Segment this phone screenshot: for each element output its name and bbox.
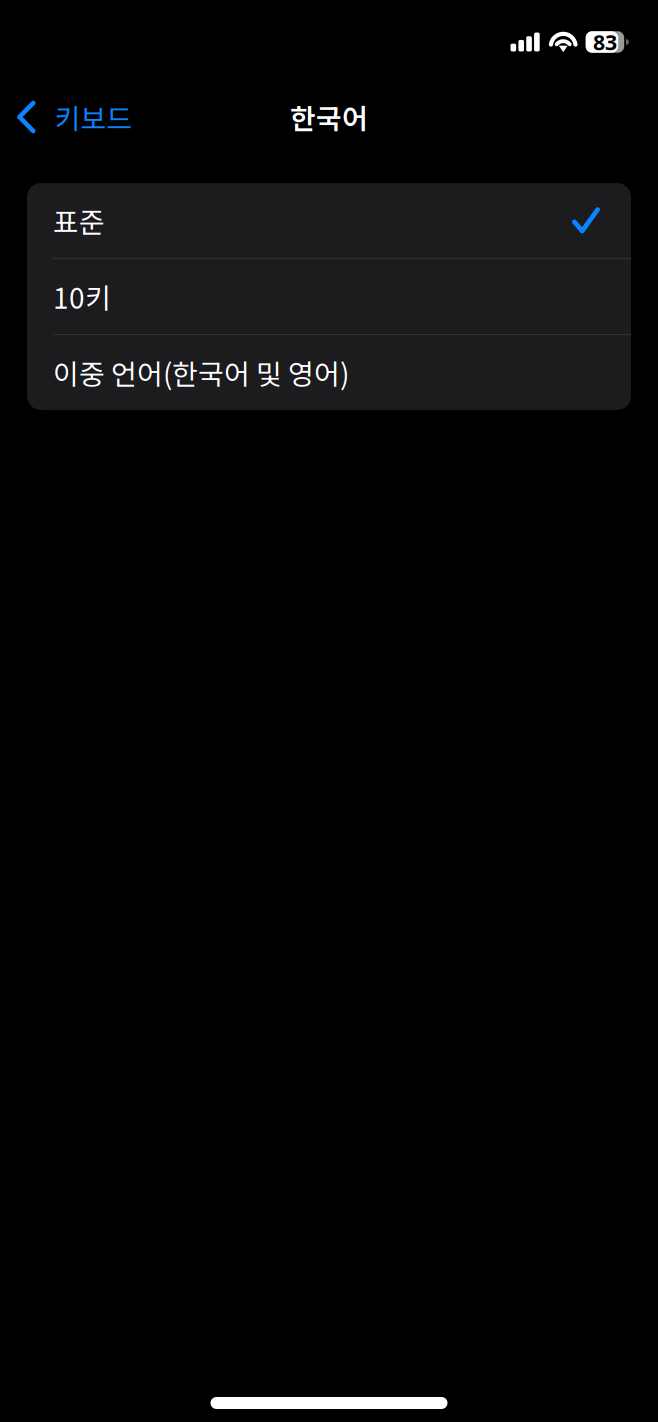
button[interactable]: 이중 언어(한국어 및 영어) <box>27 335 631 410</box>
staticText: 한국어 <box>290 97 368 137</box>
staticText: 10키 <box>53 276 111 317</box>
button[interactable]: 표준 <box>27 183 631 258</box>
staticText: 키보드 <box>55 97 133 137</box>
staticText: 표준 <box>53 200 105 241</box>
staticText: 83 <box>593 28 617 56</box>
button[interactable]: 10키 <box>27 259 631 334</box>
button[interactable]: 키보드로 돌아가기 <box>0 91 143 143</box>
staticText: 이중 언어(한국어 및 영어) <box>53 352 349 393</box>
